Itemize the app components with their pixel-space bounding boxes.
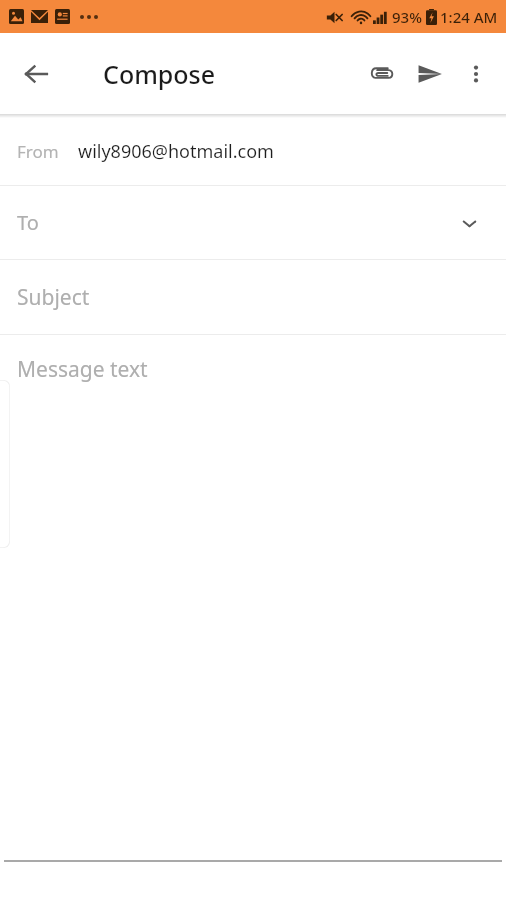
staticText: From: [17, 140, 59, 163]
button[interactable]: Send: [406, 50, 454, 98]
button[interactable]: Subject: [0, 260, 506, 334]
staticText: 1:24 AM: [440, 7, 498, 27]
staticText: Subject: [17, 283, 90, 312]
staticText: 93%: [392, 7, 422, 27]
button[interactable]: To: [0, 186, 506, 259]
button[interactable]: Show Cc and Bcc: [454, 208, 484, 238]
button[interactable]: Attach file: [358, 50, 406, 98]
button[interactable]: From: [0, 118, 506, 185]
button[interactable]: Message text: [0, 335, 506, 860]
staticText: wily8906@hotmail.com: [78, 139, 274, 164]
button[interactable]: More options: [454, 52, 498, 96]
staticText: Compose: [103, 57, 216, 91]
staticText: To: [17, 209, 454, 236]
button[interactable]: Back: [12, 50, 60, 98]
staticText: Message text: [17, 355, 148, 384]
